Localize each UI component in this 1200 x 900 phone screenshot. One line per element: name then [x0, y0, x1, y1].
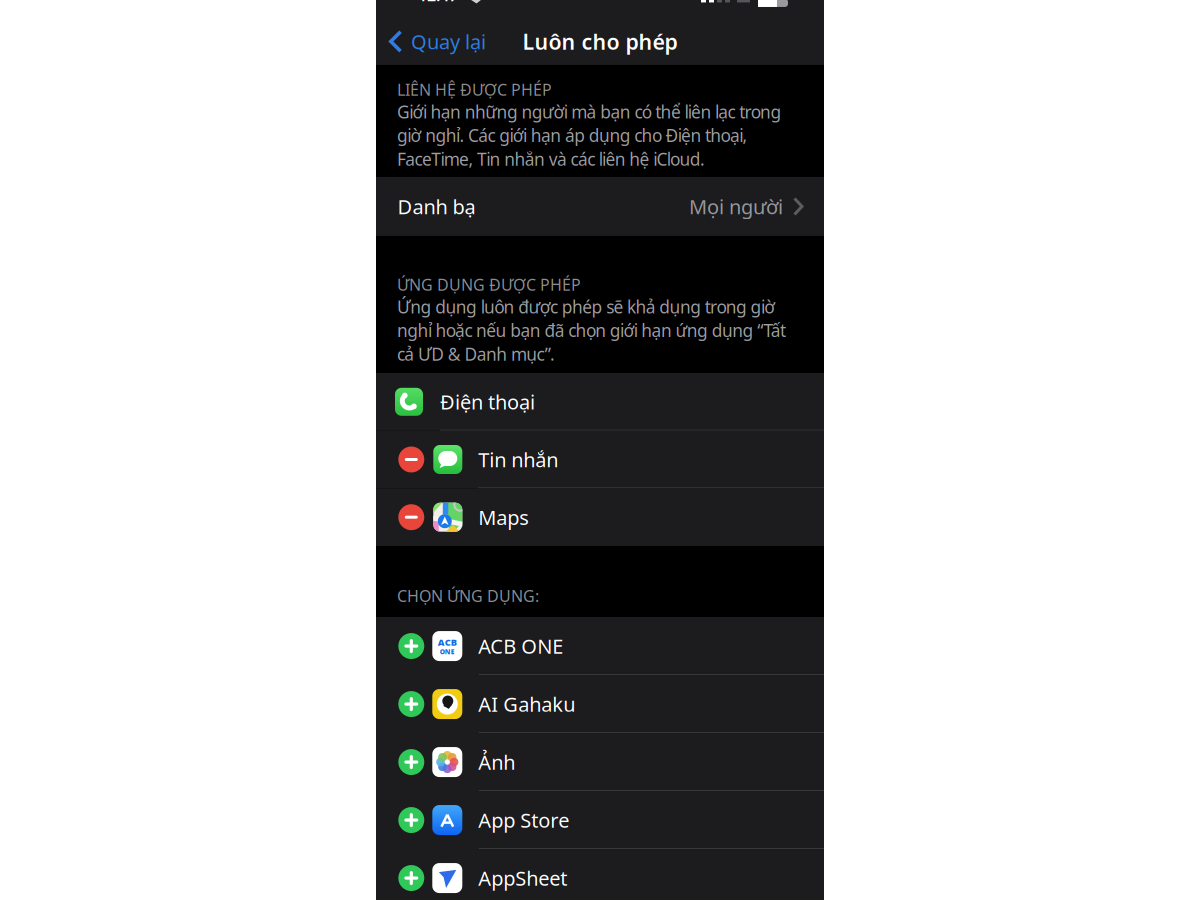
button[interactable]: Xóa [398, 504, 424, 530]
button[interactable]: Ảnh [376, 733, 824, 791]
button[interactable]: ACB [376, 617, 824, 675]
button[interactable]: AppSheet [376, 849, 824, 900]
staticText: Mọi người [689, 193, 783, 220]
button[interactable]: Xóa [398, 446, 424, 472]
button[interactable]: Thêm [398, 807, 424, 833]
button[interactable]: Thêm [398, 749, 424, 775]
staticText: ACB ONE [478, 633, 563, 659]
staticText: AppSheet [478, 865, 567, 891]
button[interactable]: AI Gahaku [376, 675, 824, 733]
staticText: AI Gahaku [478, 691, 575, 717]
staticText: Maps [478, 504, 529, 530]
staticText: Điện thoại [440, 388, 535, 415]
staticText: Quay lại [411, 28, 486, 55]
button[interactable]: Thêm [398, 865, 424, 891]
button[interactable]: Danh bạ [376, 177, 824, 236]
staticText: CHỌN ỨNG DỤNG: [397, 585, 539, 606]
staticText: ONE [440, 647, 455, 656]
staticText: ỨNG DỤNG ĐƯỢC PHÉP [397, 274, 581, 295]
staticText: Tin nhắn [478, 446, 558, 473]
staticText: LIÊN HỆ ĐƯỢC PHÉP [397, 79, 552, 100]
staticText: App Store [478, 807, 569, 833]
button[interactable]: Tin nhắn [376, 431, 824, 488]
button[interactable]: Thêm [398, 633, 424, 659]
button[interactable]: Maps [376, 488, 824, 546]
button[interactable]: Điện thoại [376, 373, 824, 431]
button[interactable]: App Store [376, 791, 824, 849]
staticText: Danh bạ [397, 193, 475, 220]
staticText: Ứng dụng luôn được phép sẽ khả dụng tron… [397, 295, 786, 365]
staticText: Ảnh [478, 749, 515, 775]
staticText: Giới hạn những người mà bạn có thể liên … [397, 100, 781, 170]
button[interactable]: Quay lại [388, 28, 486, 55]
staticText: Luôn cho phép [522, 27, 677, 56]
staticText: 12:47 [418, 0, 458, 5]
staticText: ACB [438, 636, 457, 648]
button[interactable]: Thêm [398, 691, 424, 717]
